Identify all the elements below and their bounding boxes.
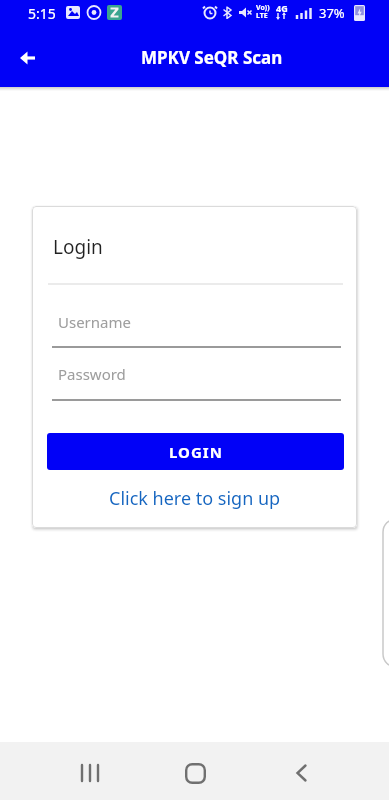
button[interactable] bbox=[280, 751, 324, 795]
staticText: 4G bbox=[276, 2, 288, 14]
button[interactable] bbox=[0, 30, 56, 86]
staticText: LOGIN bbox=[169, 442, 223, 462]
staticText: Vo)) bbox=[256, 3, 270, 13]
staticText: Username bbox=[58, 312, 131, 332]
staticText: MPKV SeQR Scan bbox=[141, 46, 283, 69]
staticText: LTE bbox=[256, 11, 268, 21]
button[interactable] bbox=[173, 751, 217, 795]
staticText: Password bbox=[58, 364, 126, 384]
button[interactable] bbox=[68, 751, 112, 795]
button[interactable]: Click here to sign up bbox=[109, 486, 281, 511]
staticText: 5:15 bbox=[28, 4, 56, 23]
staticText: Login bbox=[53, 234, 103, 260]
button[interactable]: LOGIN bbox=[47, 433, 344, 470]
staticText: 37% bbox=[319, 4, 345, 22]
